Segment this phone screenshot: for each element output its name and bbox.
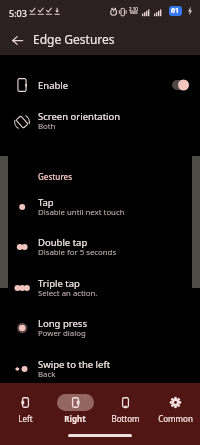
staticText: Disable for 5 seconds — [38, 247, 117, 258]
staticText: 2.10 — [129, 6, 138, 12]
staticText: Left — [18, 413, 33, 424]
staticText: Select an action. — [38, 288, 98, 299]
staticText: Tap — [38, 196, 54, 209]
staticText: Power dialog — [38, 328, 86, 339]
staticText: Both — [38, 121, 56, 132]
staticText: Long press — [38, 317, 87, 330]
button[interactable]: Swipe to the left — [0, 349, 200, 390]
staticText: Right — [64, 413, 86, 424]
staticText: Enable — [38, 79, 69, 92]
button[interactable]: Navigate up — [4, 27, 30, 53]
staticText: Disable until next touch — [38, 207, 125, 218]
button[interactable]: Double tap — [0, 227, 200, 268]
button[interactable]: Triple tap — [0, 268, 200, 309]
staticText: Screen orientation — [38, 110, 121, 123]
staticText: Gestures — [38, 171, 73, 182]
staticText: Bottom — [111, 413, 140, 424]
staticText: Back — [38, 369, 56, 380]
button[interactable]: Bottom — [100, 388, 150, 424]
button[interactable]: Enable — [0, 67, 200, 103]
staticText: Triple tap — [38, 277, 80, 290]
staticText: MB/S — [130, 11, 138, 15]
button[interactable]: Tap — [0, 187, 200, 228]
staticText: 5:03 — [9, 7, 27, 19]
staticText: 61 — [171, 6, 180, 16]
button[interactable]: Common — [150, 388, 200, 424]
staticText: Edge Gestures — [33, 31, 115, 47]
staticText: Common — [158, 413, 193, 424]
button[interactable]: Screen orientation — [0, 104, 200, 140]
staticText: Double tap — [38, 236, 88, 249]
button[interactable]: Left — [0, 388, 50, 424]
staticText: Swipe to the left — [38, 358, 111, 371]
button[interactable]: Enable toggle — [168, 67, 200, 103]
button[interactable]: Long press — [0, 308, 200, 349]
button[interactable]: Right — [50, 388, 100, 424]
